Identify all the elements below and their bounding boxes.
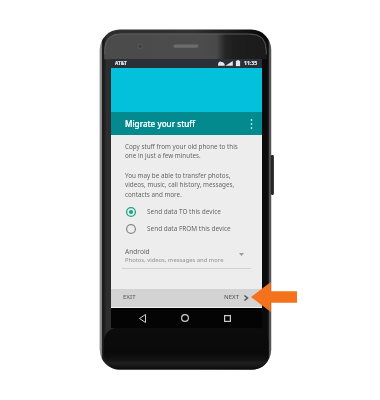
staticText: EXIT [123,293,136,301]
staticText: You may be able to transfer photos, vide… [125,171,248,199]
button[interactable]: NEXT [216,289,256,307]
staticText: Migrate your stuff [125,118,196,129]
staticText: Photos, videos, messages and more [125,256,224,264]
staticText: NEXT [224,293,240,301]
staticText: Send data TO this device [147,207,221,216]
button[interactable]: Back [132,308,152,328]
button[interactable]: EXIT [117,289,153,307]
button[interactable]: Android [111,246,262,270]
button[interactable]: Send data FROM this device [111,220,262,237]
staticText: Android [125,247,150,256]
staticText: Copy stuff from your old phone to this o… [125,142,244,160]
button[interactable]: Send data TO this device [111,203,262,220]
button[interactable]: Home [175,308,195,328]
button[interactable]: More options [247,117,256,131]
button[interactable]: Recent apps [217,308,237,328]
staticText: 11:35 [244,60,258,67]
staticText: AT&T [115,60,127,67]
staticText: Send data FROM this device [147,224,231,233]
